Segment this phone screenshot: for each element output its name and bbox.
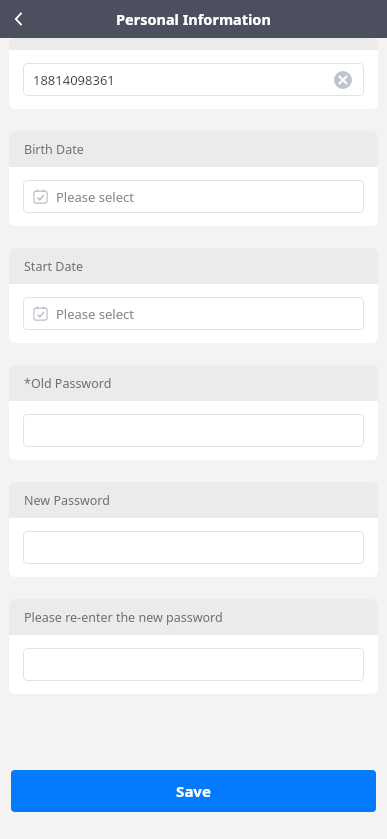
staticText: Please select [56,188,134,206]
button[interactable] [23,414,364,447]
button[interactable]: Save [11,770,376,812]
staticText: Personal Information [116,9,271,29]
button[interactable] [23,531,364,564]
staticText: Please select [56,305,134,323]
button[interactable]: Clear phone number [332,69,354,91]
staticText: 18814098361 [33,71,332,89]
button[interactable]: 18814098361 [23,63,364,96]
staticText: New Password [24,492,110,509]
staticText: Birth Date [24,141,84,158]
staticText: Start Date [24,258,84,275]
button[interactable]: Back [0,0,38,38]
staticText: Save [176,781,211,801]
staticText: Please re-enter the new password [24,609,223,626]
button[interactable] [23,648,364,681]
button[interactable]: Please select [23,180,364,213]
button[interactable]: Please select [23,297,364,330]
staticText: *Old Password [24,375,112,392]
